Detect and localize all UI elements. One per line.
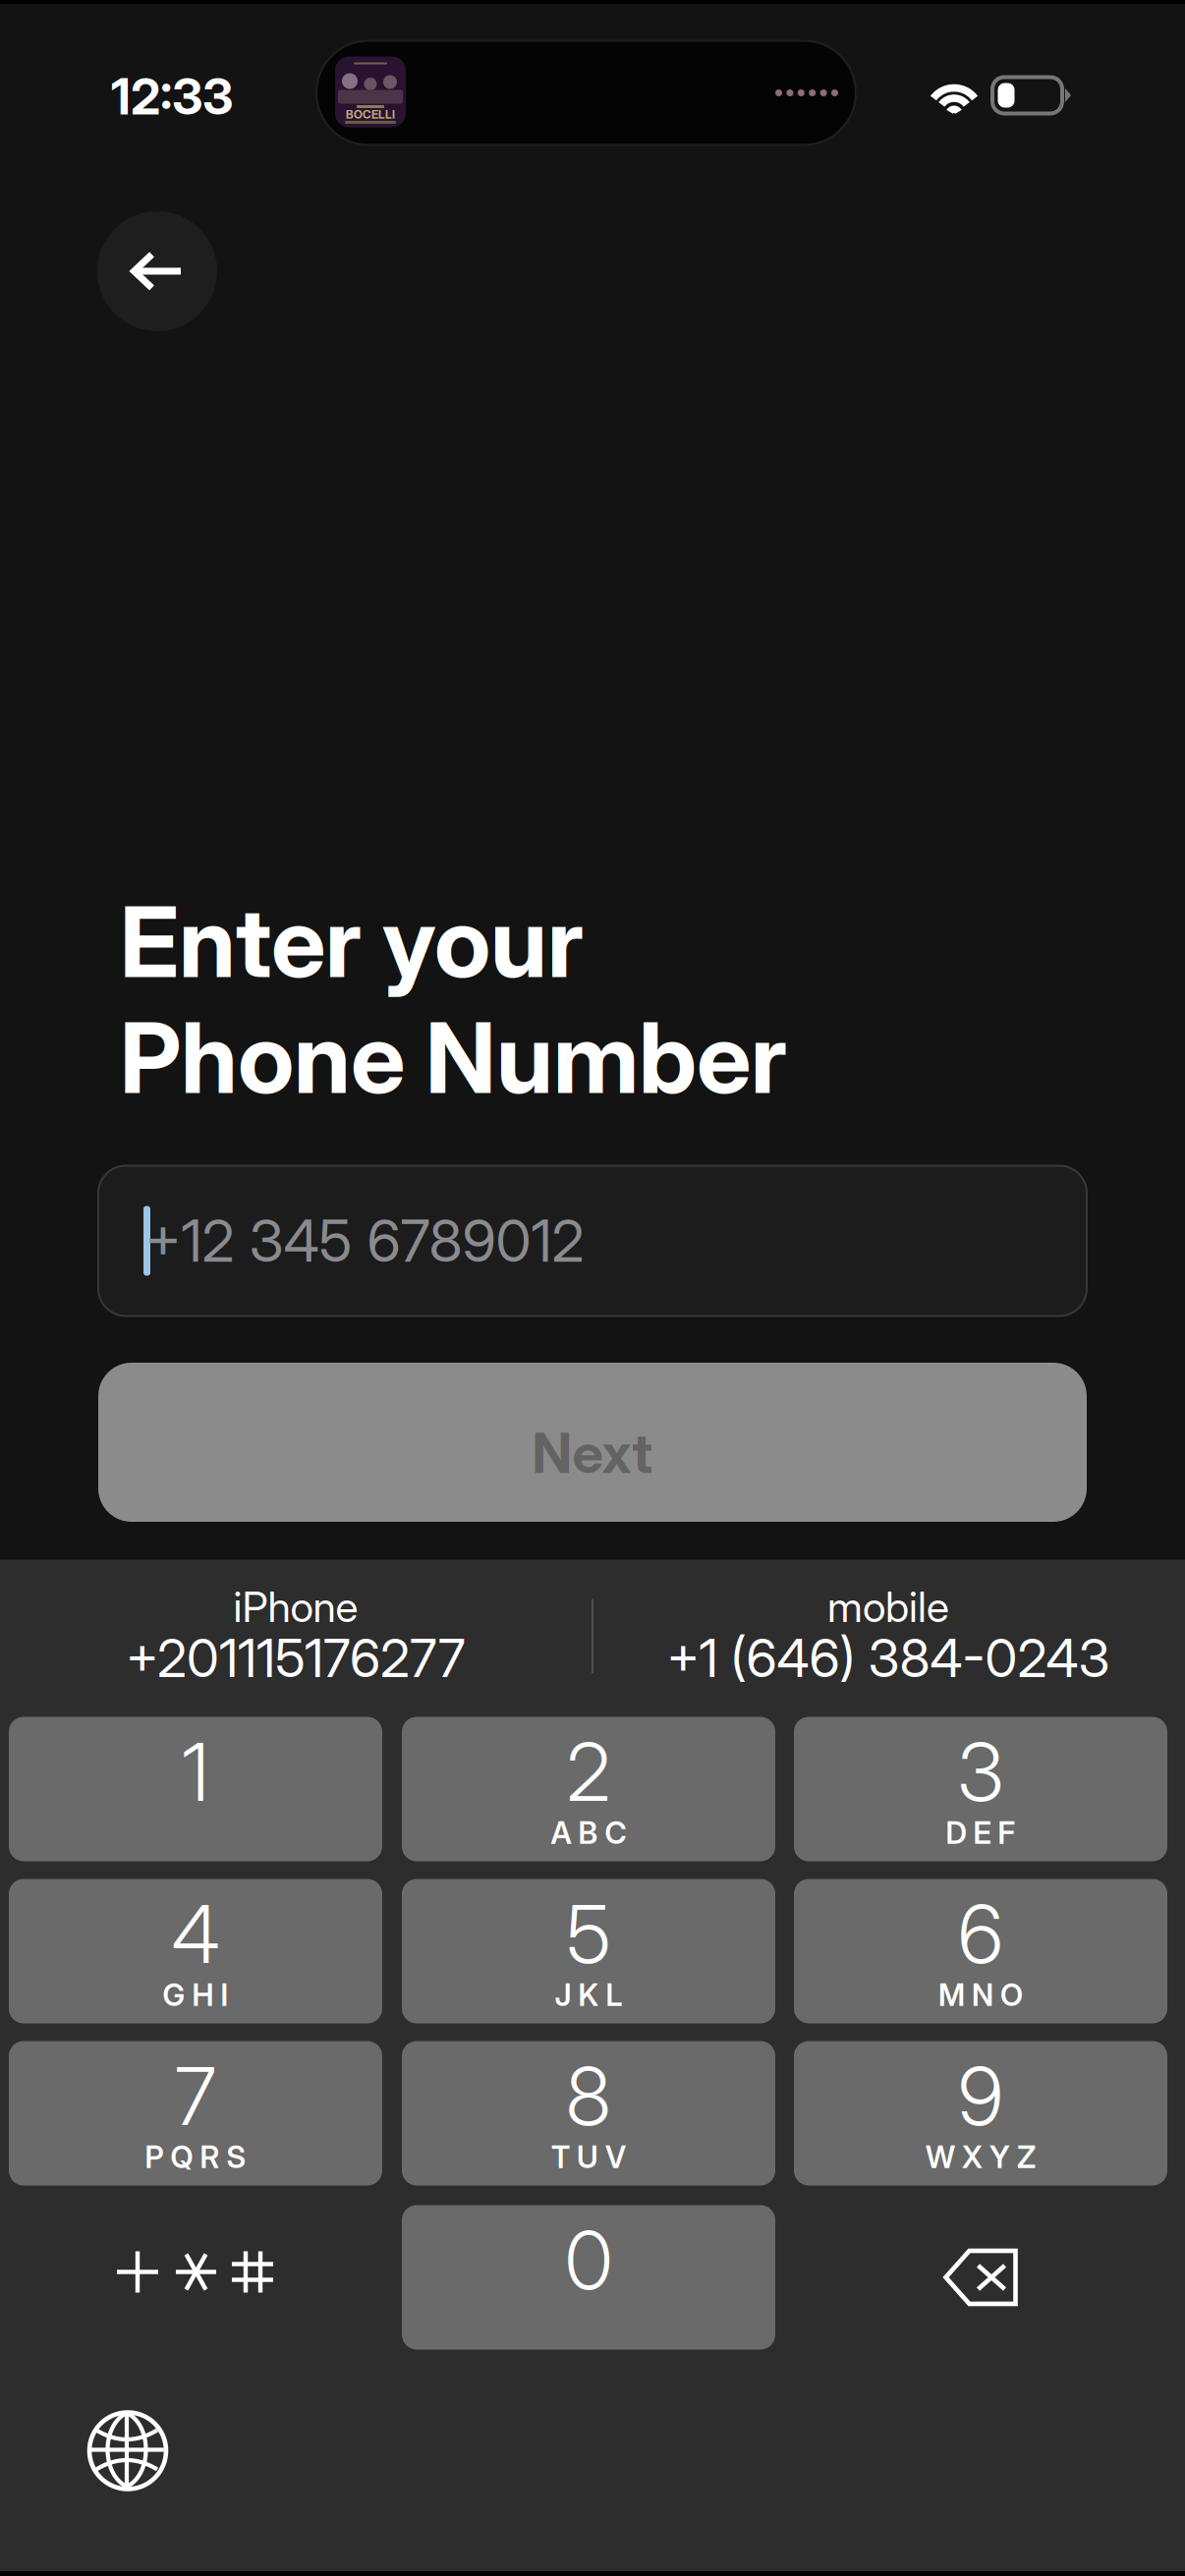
staticText: +12 345 6789012 xyxy=(145,1206,584,1276)
staticText: iPhone xyxy=(233,1581,358,1632)
staticText: 3 xyxy=(958,1724,1004,1820)
staticText: +201115176277 xyxy=(126,1626,466,1690)
staticText: W X Y Z xyxy=(926,2139,1036,2175)
staticText: D E F xyxy=(946,1814,1016,1851)
staticText: BOCELLI xyxy=(346,107,395,122)
staticText: mobile xyxy=(827,1581,949,1632)
staticText: Enter your xyxy=(120,883,584,1001)
button[interactable]: Switch keyboard xyxy=(74,2397,182,2505)
staticText: 2 xyxy=(566,1724,611,1820)
staticText: A B C xyxy=(551,1814,626,1851)
button[interactable]: 5 xyxy=(402,1879,775,2023)
button[interactable]: 6 xyxy=(794,1879,1167,2023)
staticText: G H I xyxy=(163,1977,228,2013)
staticText: 8 xyxy=(566,2048,611,2144)
button[interactable]: Delete xyxy=(794,2205,1167,2350)
staticText: 6 xyxy=(958,1886,1003,1982)
staticText: T U V xyxy=(551,2139,626,2175)
button[interactable]: 8 xyxy=(402,2041,775,2185)
button[interactable]: 3 xyxy=(794,1717,1167,1861)
staticText: J K L xyxy=(555,1977,622,2013)
button[interactable]: Back xyxy=(97,211,217,331)
staticText: 12:33 xyxy=(111,66,233,126)
staticText: Phone Number xyxy=(120,999,787,1116)
staticText: +1 (646) 384-0243 xyxy=(667,1626,1110,1690)
staticText: 4 xyxy=(171,1886,220,1982)
staticText: 7 xyxy=(175,2048,216,2144)
staticText: 1 xyxy=(182,1724,209,1820)
staticText: 5 xyxy=(566,1886,611,1982)
button[interactable]: 9 xyxy=(794,2041,1167,2185)
button[interactable]: +12 345 6789012 xyxy=(98,1166,1087,1316)
button[interactable]: Plus, star, pound xyxy=(9,2205,382,2350)
button[interactable]: 4 xyxy=(9,1879,382,2023)
button[interactable]: 7 xyxy=(9,2041,382,2185)
button[interactable]: Next xyxy=(98,1363,1087,1522)
button[interactable]: 1 xyxy=(9,1717,382,1861)
staticText: 0 xyxy=(565,2212,612,2308)
staticText: 9 xyxy=(958,2048,1003,2144)
button[interactable]: 0 xyxy=(402,2205,775,2350)
staticText: M N O xyxy=(938,1977,1023,2013)
staticText: Next xyxy=(532,1420,653,1486)
button[interactable]: 2 xyxy=(402,1717,775,1861)
staticText: P Q R S xyxy=(145,2139,246,2175)
